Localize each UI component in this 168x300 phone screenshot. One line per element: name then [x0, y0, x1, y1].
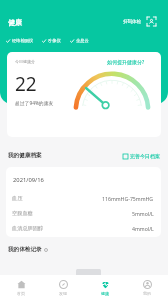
- button[interactable]: 舌像仪: [42, 38, 61, 43]
- button[interactable]: 经络检测仪: [6, 38, 33, 43]
- button[interactable]: 首页: [0, 280, 42, 296]
- staticText: 如何提升健康分?: [107, 59, 145, 66]
- button[interactable]: 2021/09/16: [6, 167, 161, 237]
- staticText: 健康: [8, 18, 22, 27]
- staticText: 4mmol/L: [132, 225, 154, 232]
- button[interactable]: 完善今日档案: [123, 153, 160, 159]
- button[interactable]: 今日健康分: [7, 52, 161, 137]
- staticText: 发现: [59, 291, 67, 296]
- staticText: 扫码体检: [123, 19, 141, 25]
- staticText: 2021/09/16: [13, 176, 44, 184]
- button[interactable]: 扫码体检: [123, 17, 156, 26]
- staticText: 空腹血糖: [12, 210, 33, 217]
- staticText: 全息云: [76, 38, 89, 43]
- staticText: 健康: [101, 291, 109, 296]
- staticText: 5mmol/L: [132, 210, 154, 217]
- staticText: 今日健康分: [15, 59, 35, 64]
- button[interactable]: 全息云: [70, 38, 89, 43]
- button[interactable]: 我的体检记录: [8, 246, 48, 253]
- button[interactable]: 我的: [126, 280, 168, 296]
- staticText: 血清总胆固醇: [12, 225, 44, 232]
- other: 扫码体检: [147, 17, 156, 26]
- staticText: 首页: [17, 291, 25, 296]
- staticText: 完善今日档案: [130, 153, 160, 159]
- staticText: 舌像仪: [48, 38, 61, 43]
- button[interactable]: 健康: [84, 280, 126, 296]
- staticText: 我的健康档案: [8, 152, 42, 159]
- staticText: 22: [15, 71, 37, 97]
- staticText: 血压: [12, 195, 23, 202]
- button[interactable]: 发现: [42, 280, 84, 296]
- staticText: 超过了94%的康友: [15, 100, 54, 107]
- staticText: 经络检测仪: [12, 38, 33, 43]
- staticText: 116mmHG-75mmHG: [102, 195, 154, 202]
- staticText: 我的体检记录: [8, 246, 42, 253]
- staticText: 我的: [143, 291, 151, 296]
